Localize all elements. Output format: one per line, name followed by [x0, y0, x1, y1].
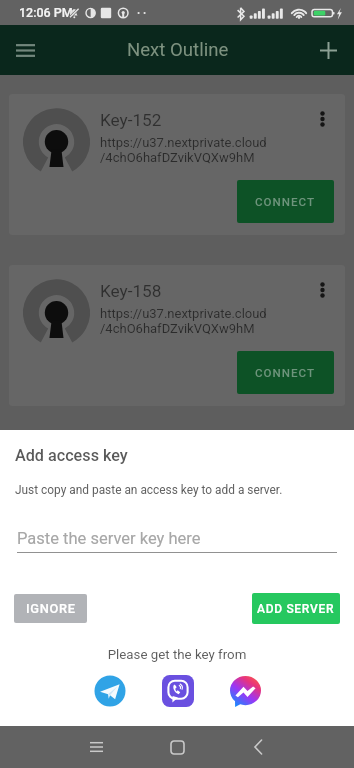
staticText: 12:06 PM	[19, 5, 73, 20]
staticText: https://u37.nextprivate.cloud /4chO6hafD…	[100, 135, 267, 166]
button[interactable]: Key-158	[9, 265, 345, 406]
staticText: Please get the key from	[0, 647, 354, 663]
staticText: Add access key	[15, 446, 128, 465]
staticText: Paste the server key here	[17, 529, 201, 548]
button[interactable]: More options	[305, 102, 339, 136]
button[interactable]: More options	[305, 273, 339, 307]
button[interactable]: ADD SERVER	[252, 593, 340, 624]
button[interactable]: Viber	[162, 675, 194, 707]
button[interactable]: Messenger	[230, 676, 261, 707]
button[interactable]: Key-152	[9, 94, 345, 235]
button[interactable]: IGNORE	[14, 594, 87, 623]
staticText: CONNECT	[255, 366, 316, 380]
staticText: Next Outline	[127, 39, 229, 61]
button[interactable]: CONNECT	[237, 180, 334, 223]
staticText: https://u37.nextprivate.cloud /4chO6hafD…	[100, 306, 267, 337]
button[interactable]: Add server	[306, 28, 350, 72]
staticText: CONNECT	[255, 195, 316, 209]
staticText: IGNORE	[26, 601, 76, 616]
staticText: Key-152	[100, 110, 162, 130]
staticText: Just copy and paste an access key to add…	[15, 483, 283, 497]
button[interactable]: Home	[160, 730, 194, 764]
button[interactable]: CONNECT	[237, 351, 334, 394]
staticText: ADD SERVER	[257, 602, 335, 616]
button[interactable]: Telegram	[94, 675, 126, 707]
button[interactable]: Open navigation menu	[3, 28, 47, 72]
button[interactable]: Back	[241, 730, 275, 764]
staticText: Key-158	[100, 281, 162, 301]
button[interactable]: Recent apps	[79, 730, 113, 764]
